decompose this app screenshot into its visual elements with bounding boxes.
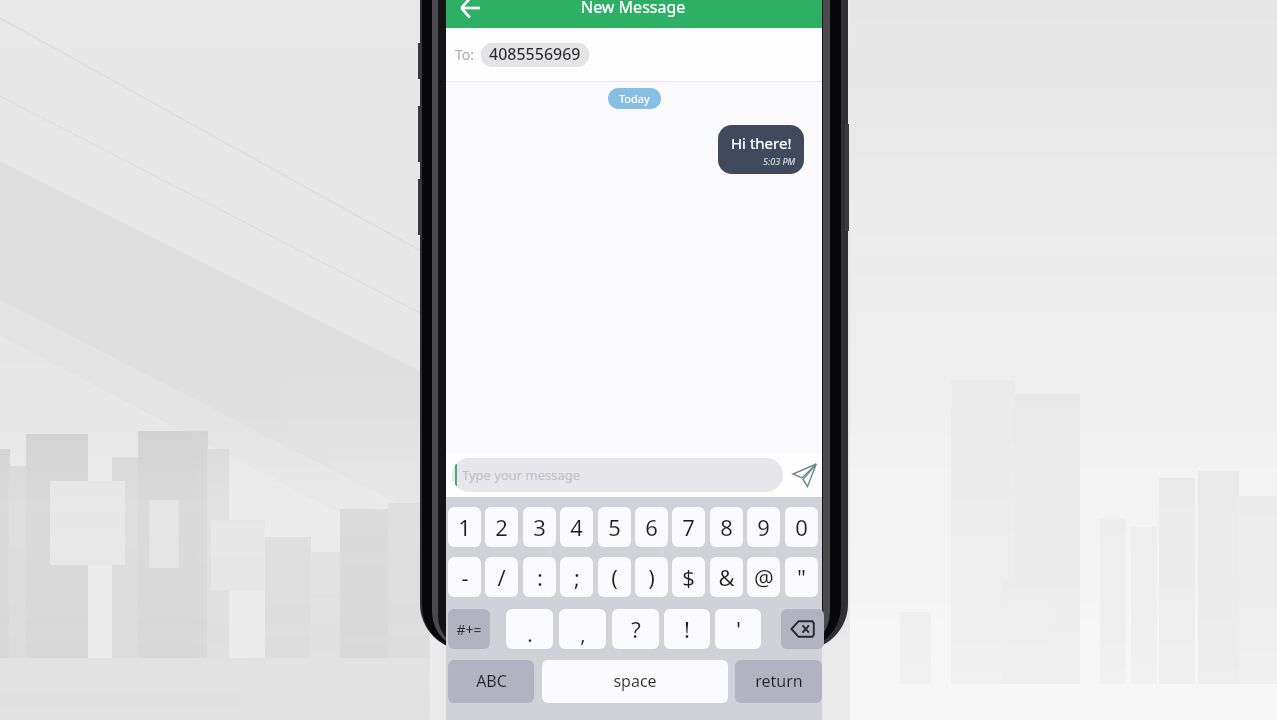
button[interactable]: @ — [747, 557, 780, 597]
staticText: 4 — [570, 512, 583, 542]
staticText: Hi there! — [731, 133, 792, 153]
button[interactable]: 3 — [523, 507, 556, 547]
button[interactable]: ' — [715, 609, 761, 649]
button[interactable]: Backspace — [781, 609, 824, 649]
button[interactable]: / — [485, 557, 518, 597]
button[interactable]: Type your message — [452, 458, 783, 492]
button[interactable]: Hi there! — [731, 133, 792, 167]
staticText: Type your message — [462, 466, 581, 484]
button[interactable]: 4 — [560, 507, 593, 547]
staticText: " — [797, 562, 806, 592]
staticText: 8 — [720, 512, 733, 542]
button[interactable]: 1 — [448, 507, 481, 547]
staticText: 3 — [533, 512, 546, 542]
button[interactable]: ( — [598, 557, 631, 597]
staticText: ) — [648, 562, 655, 592]
button[interactable]: & — [710, 557, 743, 597]
staticText: Today — [619, 91, 650, 106]
staticText: ABC — [476, 670, 507, 692]
staticText: New Message — [581, 0, 686, 18]
button[interactable]: #+= — [448, 609, 490, 649]
staticText: 1 — [458, 512, 471, 542]
staticText: 9 — [757, 512, 770, 542]
button[interactable]: 5 — [598, 507, 631, 547]
button[interactable]: 8 — [710, 507, 743, 547]
staticText: : — [537, 562, 543, 592]
button[interactable]: 2 — [485, 507, 518, 547]
staticText: ' — [736, 614, 741, 644]
staticText: 5 — [608, 512, 621, 542]
staticText: , — [580, 621, 586, 648]
staticText: 5:03 PM — [763, 155, 796, 167]
staticText: . — [527, 621, 533, 648]
staticText: space — [613, 670, 657, 692]
staticText: #+= — [456, 620, 482, 639]
button[interactable]: return — [735, 660, 822, 703]
staticText: $ — [682, 562, 695, 592]
button[interactable]: Send — [786, 456, 822, 494]
button[interactable]: 4085556969 — [489, 43, 581, 67]
staticText: 0 — [795, 512, 808, 542]
staticText: & — [718, 562, 735, 592]
staticText: 7 — [682, 512, 695, 542]
staticText: ( — [611, 562, 618, 592]
staticText: ! — [684, 614, 690, 644]
button[interactable]: $ — [672, 557, 705, 597]
staticText: ; — [574, 562, 580, 592]
staticText: ? — [631, 614, 641, 644]
staticText: 2 — [495, 512, 508, 542]
button[interactable]: ; — [560, 557, 593, 597]
button[interactable]: ABC — [448, 660, 534, 703]
staticText: 6 — [645, 512, 658, 542]
button[interactable]: 9 — [747, 507, 780, 547]
button[interactable]: Back — [453, 0, 487, 22]
button[interactable]: , — [559, 609, 606, 649]
staticText: 4085556969 — [489, 43, 581, 65]
staticText: - — [461, 562, 469, 592]
button[interactable]: . — [506, 609, 553, 649]
button[interactable]: space — [542, 660, 728, 703]
button[interactable]: " — [785, 557, 818, 597]
button[interactable]: 0 — [785, 507, 818, 547]
button[interactable]: ) — [635, 557, 668, 597]
button[interactable]: : — [523, 557, 556, 597]
staticText: To: — [455, 45, 475, 64]
button[interactable]: ! — [664, 609, 710, 649]
button[interactable]: 7 — [672, 507, 705, 547]
button[interactable]: - — [448, 557, 481, 597]
button[interactable]: 6 — [635, 507, 668, 547]
staticText: / — [497, 562, 506, 592]
button[interactable]: ? — [612, 609, 659, 649]
staticText: return — [755, 670, 803, 692]
staticText: @ — [754, 562, 774, 592]
